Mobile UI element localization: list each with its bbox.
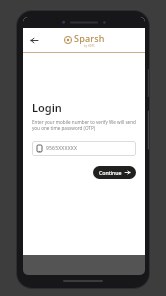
staticText: Continue: [99, 169, 122, 176]
staticText: Sparsh: [74, 32, 105, 44]
staticText: Enter your mobile number to verify We wi…: [32, 119, 136, 132]
button[interactable]: Continue: [93, 166, 136, 179]
button[interactable]: Back: [27, 33, 41, 47]
button[interactable]: Sparsh: [64, 32, 105, 48]
button[interactable]: 9565XXXXXX: [32, 141, 136, 156]
staticText: Login: [32, 100, 62, 115]
staticText: by HDFC: [84, 44, 96, 48]
staticText: 9565XXXXXX: [46, 145, 78, 152]
